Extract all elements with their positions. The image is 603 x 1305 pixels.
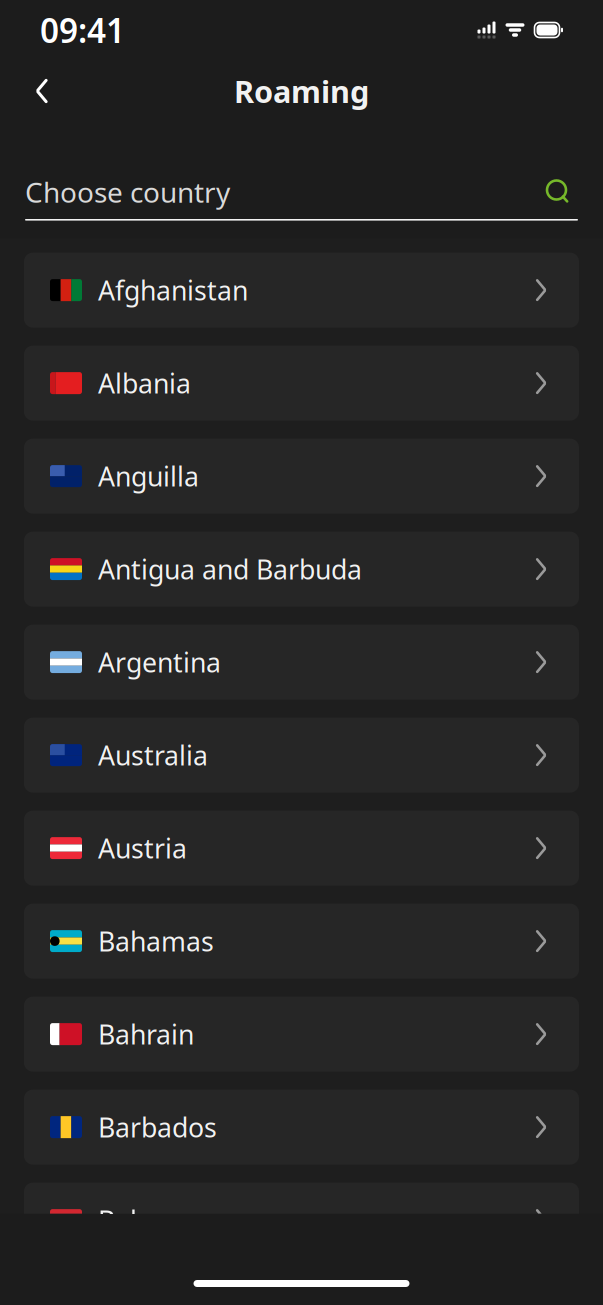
staticText: Roaming	[234, 71, 369, 111]
button[interactable]: Bahrain	[24, 997, 579, 1072]
button[interactable]: Barbados	[24, 1090, 579, 1165]
button[interactable]: Belarus	[24, 1183, 579, 1258]
staticText: Anguilla	[98, 458, 199, 494]
staticText: Austria	[98, 830, 187, 866]
button[interactable]: Bahamas	[24, 904, 579, 979]
staticText: Argentina	[98, 644, 221, 680]
button[interactable]: Australia	[24, 718, 579, 793]
button[interactable]: Afghanistan	[24, 253, 579, 328]
button[interactable]: Austria	[24, 811, 579, 886]
staticText: Antigua and Barbuda	[98, 551, 362, 587]
staticText: Choose country	[25, 173, 230, 211]
staticText: Belarus	[98, 1202, 192, 1238]
button[interactable]: Back	[16, 65, 68, 117]
staticText: Barbados	[98, 1109, 217, 1145]
staticText: Bahamas	[98, 923, 214, 959]
button[interactable]: Albania	[24, 346, 579, 421]
staticText: 09:41	[40, 8, 125, 52]
button[interactable]: Argentina	[24, 625, 579, 700]
staticText: Bahrain	[98, 1016, 194, 1052]
staticText: Albania	[98, 365, 191, 401]
staticText: Australia	[98, 737, 208, 773]
button[interactable]: Anguilla	[24, 439, 579, 514]
staticText: Afghanistan	[98, 272, 248, 308]
button[interactable]: Antigua and Barbuda	[24, 532, 579, 607]
button[interactable]: Search	[538, 175, 578, 209]
